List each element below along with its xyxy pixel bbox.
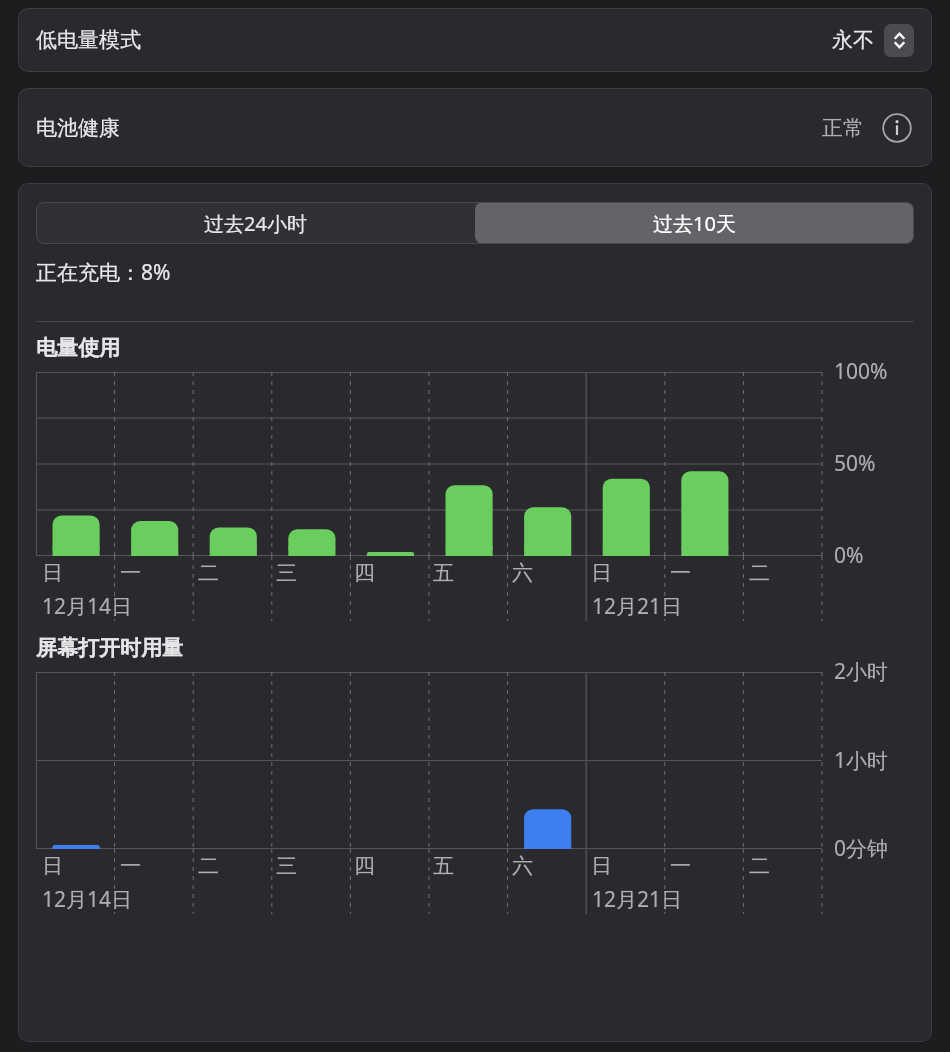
button[interactable]: Change low power mode setting	[884, 24, 914, 57]
button[interactable]: 低电量模式	[18, 8, 932, 72]
staticText: 12月21日	[592, 592, 683, 621]
button[interactable]: Battery health information	[880, 111, 914, 145]
staticText: 0分钟	[834, 834, 889, 863]
staticText: 电池健康	[36, 115, 120, 141]
staticText: 12月21日	[592, 885, 683, 914]
button[interactable]: 电池健康	[18, 88, 932, 167]
button[interactable]: 过去10天	[475, 202, 914, 244]
staticText: 一	[120, 853, 141, 879]
staticText: 二	[198, 853, 219, 879]
staticText: 屏幕打开时用量	[36, 635, 183, 661]
staticText: 日	[591, 853, 612, 879]
staticText: 12月14日	[42, 885, 133, 914]
staticText: 五	[433, 853, 454, 879]
staticText: 日	[42, 560, 63, 586]
staticText: 四	[354, 560, 375, 586]
staticText: 一	[670, 560, 691, 586]
staticText: 四	[354, 853, 375, 879]
staticText: 三	[276, 560, 297, 586]
staticText: 二	[749, 560, 770, 586]
staticText: 1小时	[834, 746, 889, 775]
staticText: 二	[198, 560, 219, 586]
staticText: 低电量模式	[36, 27, 141, 53]
staticText: 正在充电：8%	[36, 258, 171, 287]
staticText: 50%	[834, 449, 876, 478]
staticText: 一	[670, 853, 691, 879]
staticText: 三	[276, 853, 297, 879]
staticText: 二	[749, 853, 770, 879]
staticText: 100%	[834, 357, 888, 386]
staticText: 2小时	[834, 657, 889, 686]
staticText: 0%	[834, 541, 864, 570]
staticText: 过去24小时	[204, 210, 307, 237]
staticText: 电量使用	[36, 335, 120, 361]
staticText: 日	[42, 853, 63, 879]
staticText: 日	[591, 560, 612, 586]
staticText: 六	[512, 853, 533, 879]
staticText: 五	[433, 560, 454, 586]
button[interactable]: 过去24小时	[36, 202, 475, 244]
staticText: 12月14日	[42, 592, 133, 621]
staticText: 过去10天	[653, 210, 736, 237]
staticText: 正常	[822, 115, 864, 141]
staticText: 六	[512, 560, 533, 586]
staticText: 永不	[832, 27, 874, 53]
staticText: 一	[120, 560, 141, 586]
